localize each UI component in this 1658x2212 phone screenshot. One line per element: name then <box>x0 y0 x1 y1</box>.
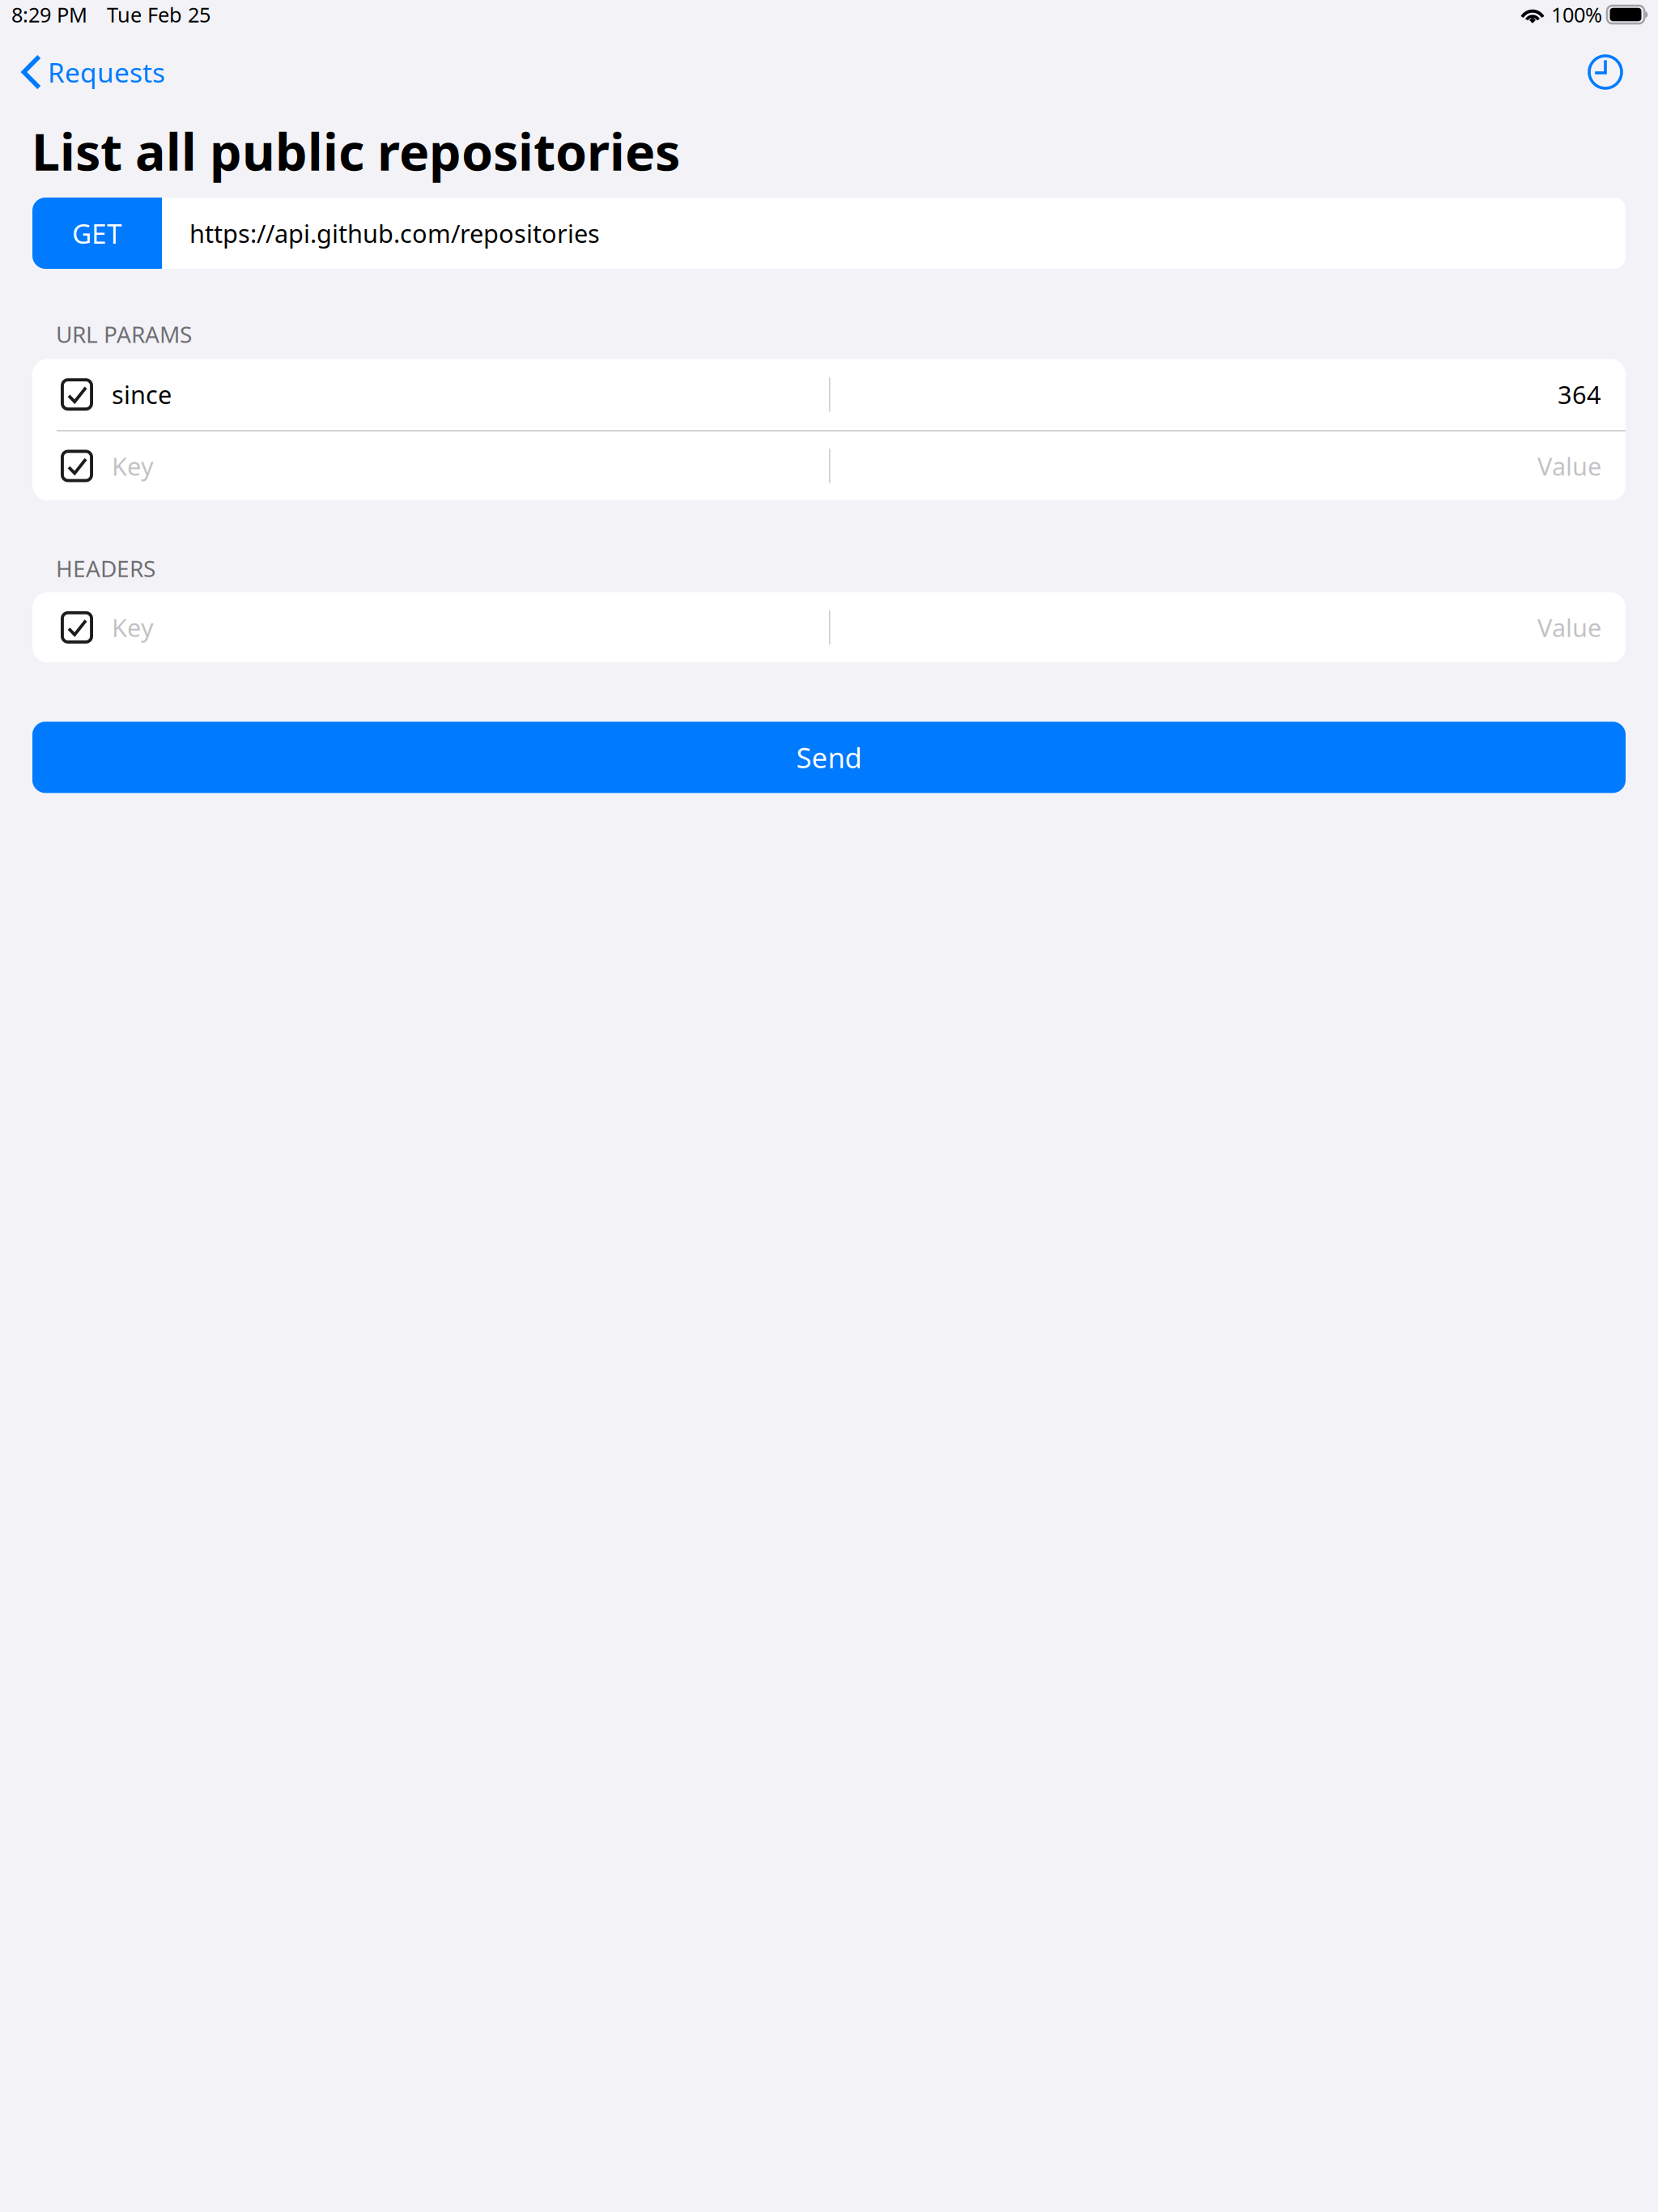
staticText: since <box>112 378 172 411</box>
staticText: 8:29 PM <box>11 1 87 28</box>
button[interactable]: Send <box>32 722 1626 793</box>
staticText: HEADERS <box>56 553 155 583</box>
staticText: Key <box>112 611 154 644</box>
staticText: Key <box>112 449 154 482</box>
button[interactable]: Requests <box>0 47 180 97</box>
staticText: 100% <box>1551 1 1602 28</box>
staticText: https://api.github.com/repositories <box>189 217 600 250</box>
staticText: URL PARAMS <box>56 319 192 349</box>
button[interactable]: HTTP method: GET <box>32 198 162 269</box>
staticText: Value <box>1537 611 1601 644</box>
staticText: 364 <box>1558 378 1601 411</box>
button[interactable]: Enable since <box>32 359 112 430</box>
staticText: Send <box>796 739 862 776</box>
staticText: List all public repositories <box>32 117 680 185</box>
button[interactable]: Enable Key <box>32 431 112 501</box>
staticText: Tue Feb 25 <box>107 1 210 28</box>
button[interactable]: Enable Key <box>32 592 112 663</box>
staticText: Requests <box>48 54 165 90</box>
staticText: GET <box>72 215 122 251</box>
staticText: Value <box>1537 449 1601 482</box>
button[interactable]: Request history <box>1588 47 1658 97</box>
